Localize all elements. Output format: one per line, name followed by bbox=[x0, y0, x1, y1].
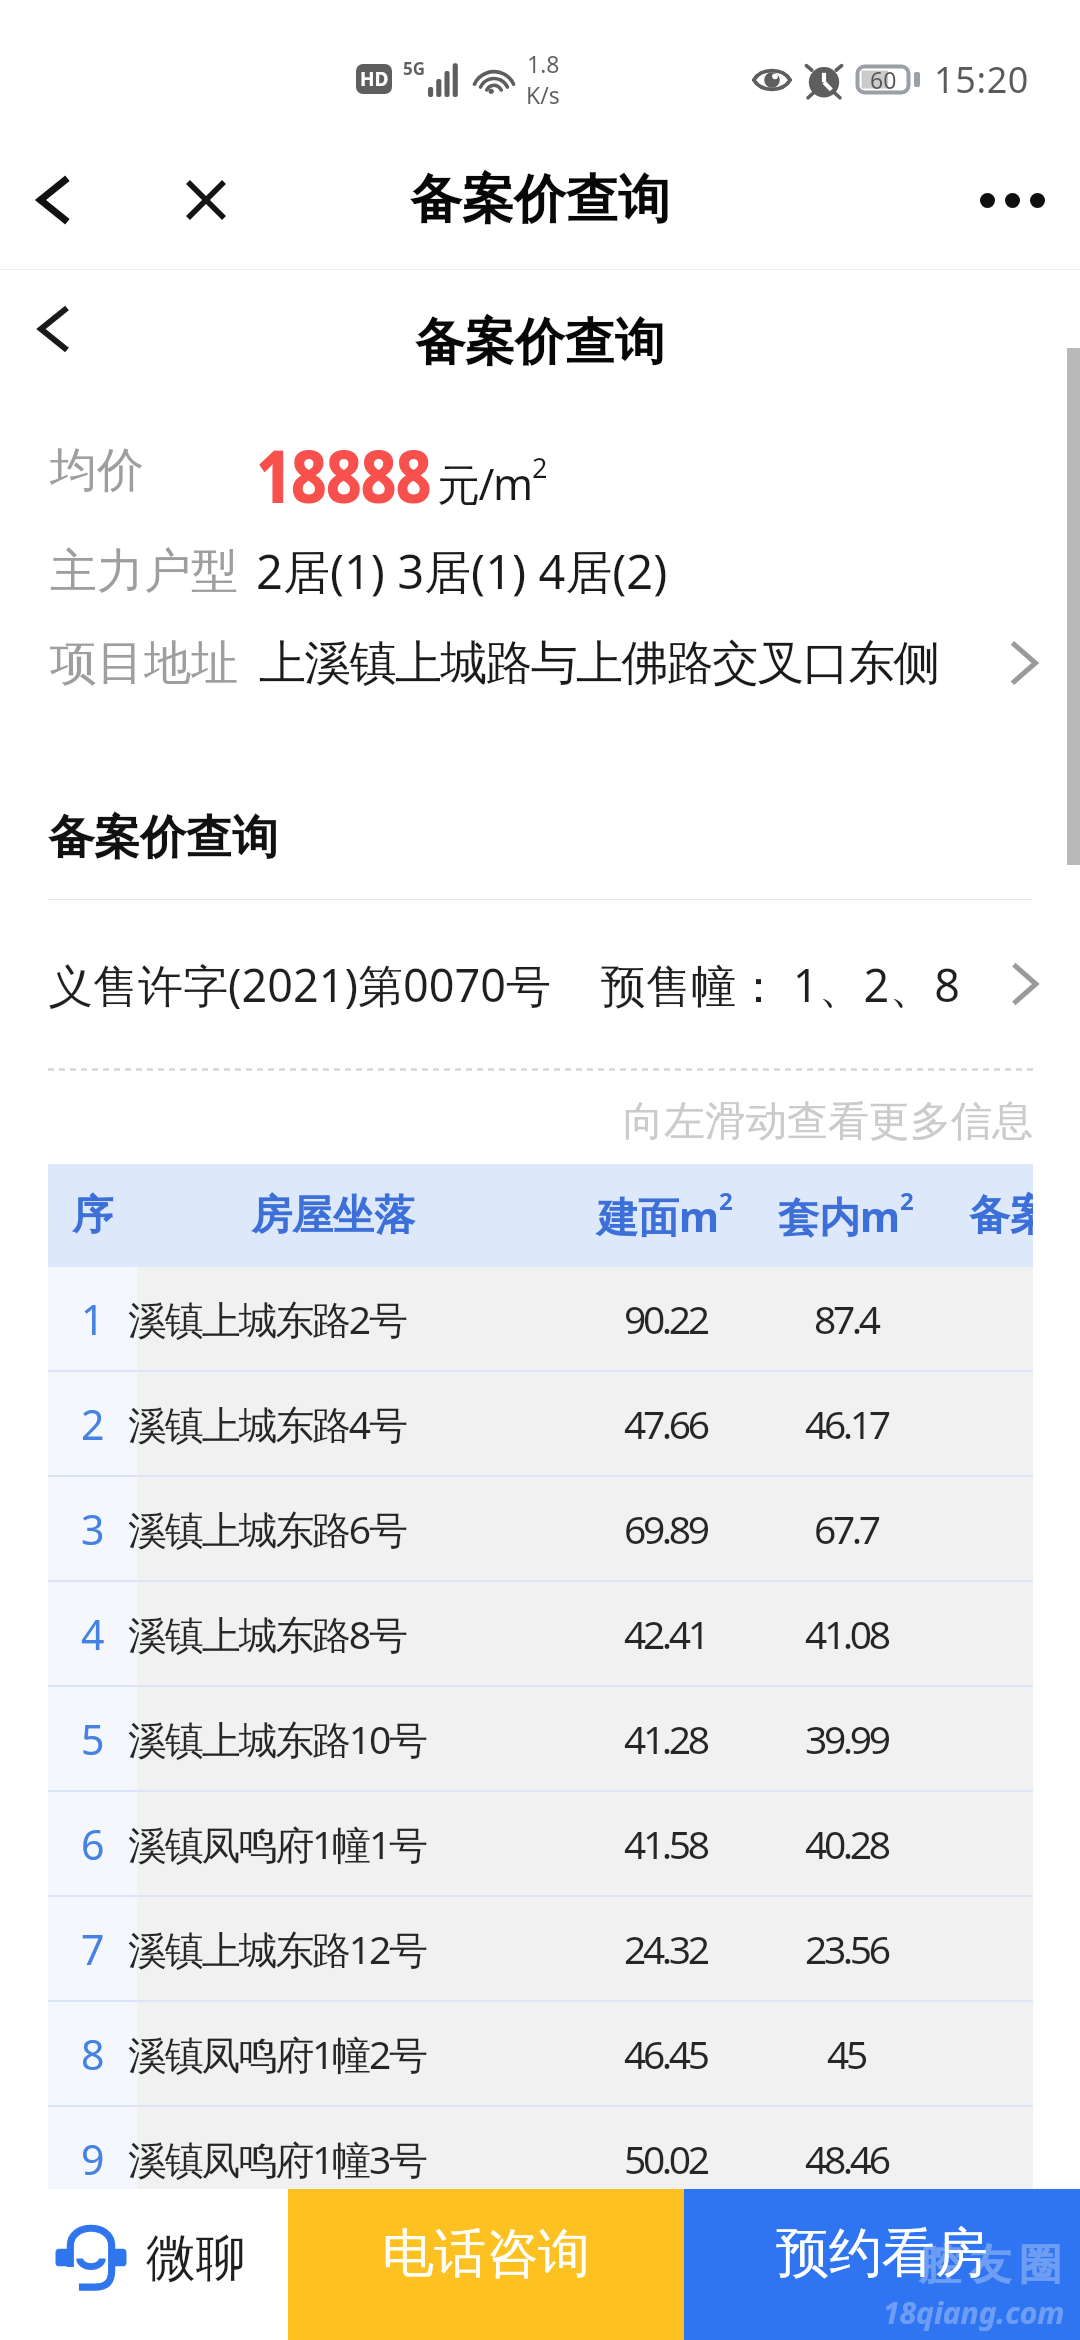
staticText: 46.17 bbox=[805, 1397, 888, 1450]
staticText: 溪镇上城东路2号 bbox=[128, 1292, 406, 1345]
staticText: 备案价查询 bbox=[415, 311, 665, 374]
staticText: 60 bbox=[870, 64, 897, 95]
staticText: 溪镇凤鸣府1幢2号 bbox=[128, 2027, 426, 2080]
staticText: 主力户型 bbox=[50, 542, 238, 601]
button[interactable]: More options bbox=[966, 154, 1058, 246]
button[interactable]: 4 bbox=[48, 1582, 1033, 1685]
staticText: 47.66 bbox=[624, 1397, 707, 1450]
staticText: 2 bbox=[81, 1396, 105, 1452]
staticText: 溪镇上城东路12号 bbox=[128, 1922, 426, 1975]
staticText: 23.56 bbox=[805, 1922, 888, 1975]
staticText: 8 bbox=[81, 2026, 105, 2082]
staticText: 46.45 bbox=[624, 2027, 707, 2080]
button[interactable]: 3 bbox=[48, 1477, 1033, 1580]
staticText: 2 bbox=[532, 449, 548, 486]
staticText: 90.22 bbox=[624, 1292, 707, 1345]
button[interactable]: 项目地址 bbox=[0, 617, 1080, 709]
button[interactable]: 微聊 bbox=[0, 2189, 288, 2340]
button[interactable]: 预约看房 bbox=[684, 2189, 1080, 2340]
button[interactable]: Back bbox=[14, 158, 98, 242]
staticText: 预售幢： 1、2、8 bbox=[601, 954, 960, 1015]
staticText: 房屋坐落 bbox=[251, 1190, 415, 1242]
staticText: 15:20 bbox=[934, 55, 1030, 104]
staticText: 备案价查询 bbox=[410, 167, 670, 233]
staticText: 7 bbox=[81, 1921, 105, 1977]
staticText: 69.89 bbox=[624, 1502, 707, 1555]
staticText: HD bbox=[360, 66, 389, 92]
staticText: 9 bbox=[81, 2131, 105, 2187]
staticText: 备案价查询 bbox=[48, 809, 278, 867]
staticText: 39.99 bbox=[805, 1712, 888, 1765]
staticText: 3 bbox=[81, 1501, 105, 1557]
button[interactable]: 1 bbox=[48, 1267, 1033, 1370]
button[interactable]: 义售许字(2021)第0070号 bbox=[0, 900, 1080, 1068]
staticText: 上溪镇上城路与上佛路交叉口东侧 bbox=[259, 634, 939, 693]
staticText: 套内m bbox=[778, 1188, 900, 1244]
staticText: 42.41 bbox=[624, 1607, 707, 1660]
staticText: 2 bbox=[900, 1184, 914, 1217]
staticText: 18888 bbox=[256, 424, 431, 516]
staticText: 建面m bbox=[597, 1188, 719, 1244]
staticText: 腔友圈 bbox=[915, 2239, 1065, 2292]
button[interactable]: 5 bbox=[48, 1687, 1033, 1790]
staticText: 48.46 bbox=[805, 2132, 888, 2185]
staticText: 微聊 bbox=[146, 2227, 246, 2290]
staticText: 溪镇上城东路8号 bbox=[128, 1607, 406, 1660]
staticText: 67.7 bbox=[814, 1502, 878, 1555]
staticText: 溪镇凤鸣府1幢3号 bbox=[128, 2132, 426, 2185]
button[interactable]: 9 bbox=[48, 2107, 1033, 2210]
staticText: 溪镇上城东路10号 bbox=[128, 1712, 426, 1765]
staticText: 2居(1) 3居(1) 4居(2) bbox=[256, 539, 668, 603]
staticText: 电话咨询 bbox=[382, 2221, 590, 2287]
button[interactable]: 电话咨询 bbox=[288, 2189, 684, 2340]
button[interactable]: Close bbox=[164, 158, 248, 242]
staticText: K/s bbox=[526, 79, 560, 110]
staticText: 41.58 bbox=[624, 1817, 707, 1870]
staticText: 备案价 bbox=[969, 1190, 1033, 1242]
staticText: 义售许字(2021)第0070号 bbox=[48, 954, 551, 1015]
staticText: 项目地址 bbox=[50, 634, 238, 693]
staticText: 87.4 bbox=[814, 1292, 878, 1345]
staticText: 预约看房 bbox=[776, 2220, 988, 2287]
staticText: 溪镇凤鸣府1幢1号 bbox=[128, 1817, 426, 1870]
staticText: 均价 bbox=[50, 441, 144, 500]
staticText: 40.28 bbox=[805, 1817, 888, 1870]
button[interactable]: Back bbox=[14, 287, 98, 371]
staticText: 41.08 bbox=[805, 1607, 888, 1660]
staticText: 24.32 bbox=[624, 1922, 707, 1975]
staticText: 18qiang.com bbox=[883, 2292, 1065, 2333]
button[interactable]: 6 bbox=[48, 1792, 1033, 1895]
staticText: 50.02 bbox=[624, 2132, 707, 2185]
staticText: 1 bbox=[81, 1291, 105, 1347]
staticText: 41.28 bbox=[624, 1712, 707, 1765]
staticText: 5 bbox=[81, 1711, 105, 1767]
staticText: 元/m bbox=[437, 454, 532, 513]
staticText: 溪镇上城东路4号 bbox=[128, 1397, 406, 1450]
button[interactable]: 2 bbox=[48, 1372, 1033, 1475]
staticText: 5G bbox=[403, 57, 426, 80]
staticText: 溪镇上城东路6号 bbox=[128, 1502, 406, 1555]
button[interactable]: 7 bbox=[48, 1897, 1033, 2000]
staticText: 2 bbox=[719, 1184, 733, 1217]
staticText: 4 bbox=[81, 1606, 105, 1662]
button[interactable]: 8 bbox=[48, 2002, 1033, 2105]
staticText: 向左滑动查看更多信息 bbox=[623, 1096, 1033, 1148]
staticText: 6 bbox=[81, 1816, 105, 1872]
staticText: 序 bbox=[72, 1190, 113, 1242]
staticText: 45 bbox=[827, 2027, 865, 2080]
staticText: 1.8 bbox=[527, 48, 560, 79]
